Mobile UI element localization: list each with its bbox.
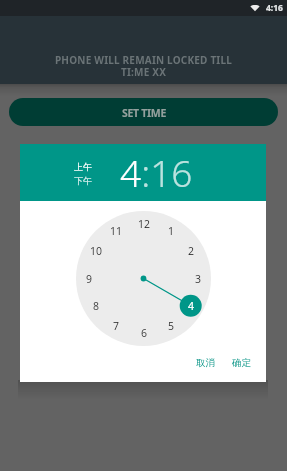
button[interactable]: 6 [133,324,155,342]
button[interactable]: 9 [78,270,100,288]
staticText: 4:16 [120,147,193,197]
staticText: PHONE WILL REMAIN LOCKED TILL TI:ME XX [0,53,287,79]
staticText: 4:16 [266,2,283,14]
button[interactable]: 4 [180,297,202,315]
staticText: SET TIME [122,106,166,120]
button[interactable]: 5 [160,317,182,335]
staticText: 5 [168,319,175,333]
other: Wi-Fi [250,4,260,12]
button[interactable]: 11 [105,222,127,240]
button[interactable]: 8 [85,297,107,315]
button[interactable]: 10 [85,242,107,260]
staticText: 10 [90,244,103,258]
staticText: 12 [138,217,151,231]
button[interactable]: 上午 [74,161,92,172]
button[interactable]: 确定 [225,353,258,373]
button[interactable]: SET TIME [9,98,278,126]
staticText: 7 [113,319,120,333]
button[interactable]: 3 [187,270,209,288]
staticText: 4 [188,299,195,313]
staticText: 2 [188,244,195,258]
staticText: 6 [141,326,148,340]
button[interactable]: 取消 [189,353,222,373]
staticText: 取消 [196,357,215,369]
staticText: 上午 [74,161,92,172]
staticText: 确定 [232,357,251,369]
staticText: 下午 [74,175,92,186]
staticText: 9 [86,272,93,286]
button[interactable]: 下午 [74,175,92,186]
button[interactable]: 7 [105,317,127,335]
staticText: 8 [93,299,100,313]
button[interactable]: 2 [180,242,202,260]
staticText: 3 [195,272,202,286]
staticText: 11 [110,224,123,238]
button[interactable]: 1 [160,222,182,240]
staticText: 1 [168,224,175,238]
button[interactable]: 12 [133,215,155,233]
